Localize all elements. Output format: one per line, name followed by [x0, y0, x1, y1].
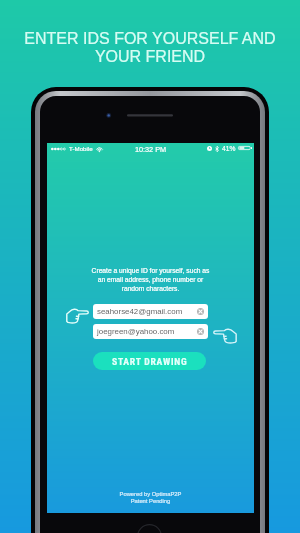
- staticText: 10:32 PM: [47, 145, 254, 153]
- other: Pointer: [213, 328, 237, 343]
- other: Clear text: [197, 328, 204, 335]
- other: Pointer: [66, 308, 89, 323]
- staticText: 41%: [222, 145, 236, 152]
- staticText: Powered by OptimaP2P Patent Pending: [47, 491, 254, 505]
- staticText: joegreen@yahoo.com: [97, 327, 175, 336]
- staticText: ENTER IDS FOR YOURSELF AND YOUR FRIEND: [0, 30, 300, 65]
- other: Home: [137, 524, 162, 533]
- button[interactable]: seahorse42@gmail.com: [93, 304, 208, 319]
- button[interactable]: joegreen@yahoo.com: [93, 324, 208, 339]
- other: Clear text: [197, 308, 204, 315]
- staticText: T-Mobile: [69, 145, 93, 152]
- staticText: seahorse42@gmail.com: [97, 307, 183, 316]
- button[interactable]: START DRAWING: [93, 352, 206, 370]
- staticText: START DRAWING: [112, 356, 188, 367]
- staticText: Create a unique ID for yourself, such as…: [47, 267, 254, 293]
